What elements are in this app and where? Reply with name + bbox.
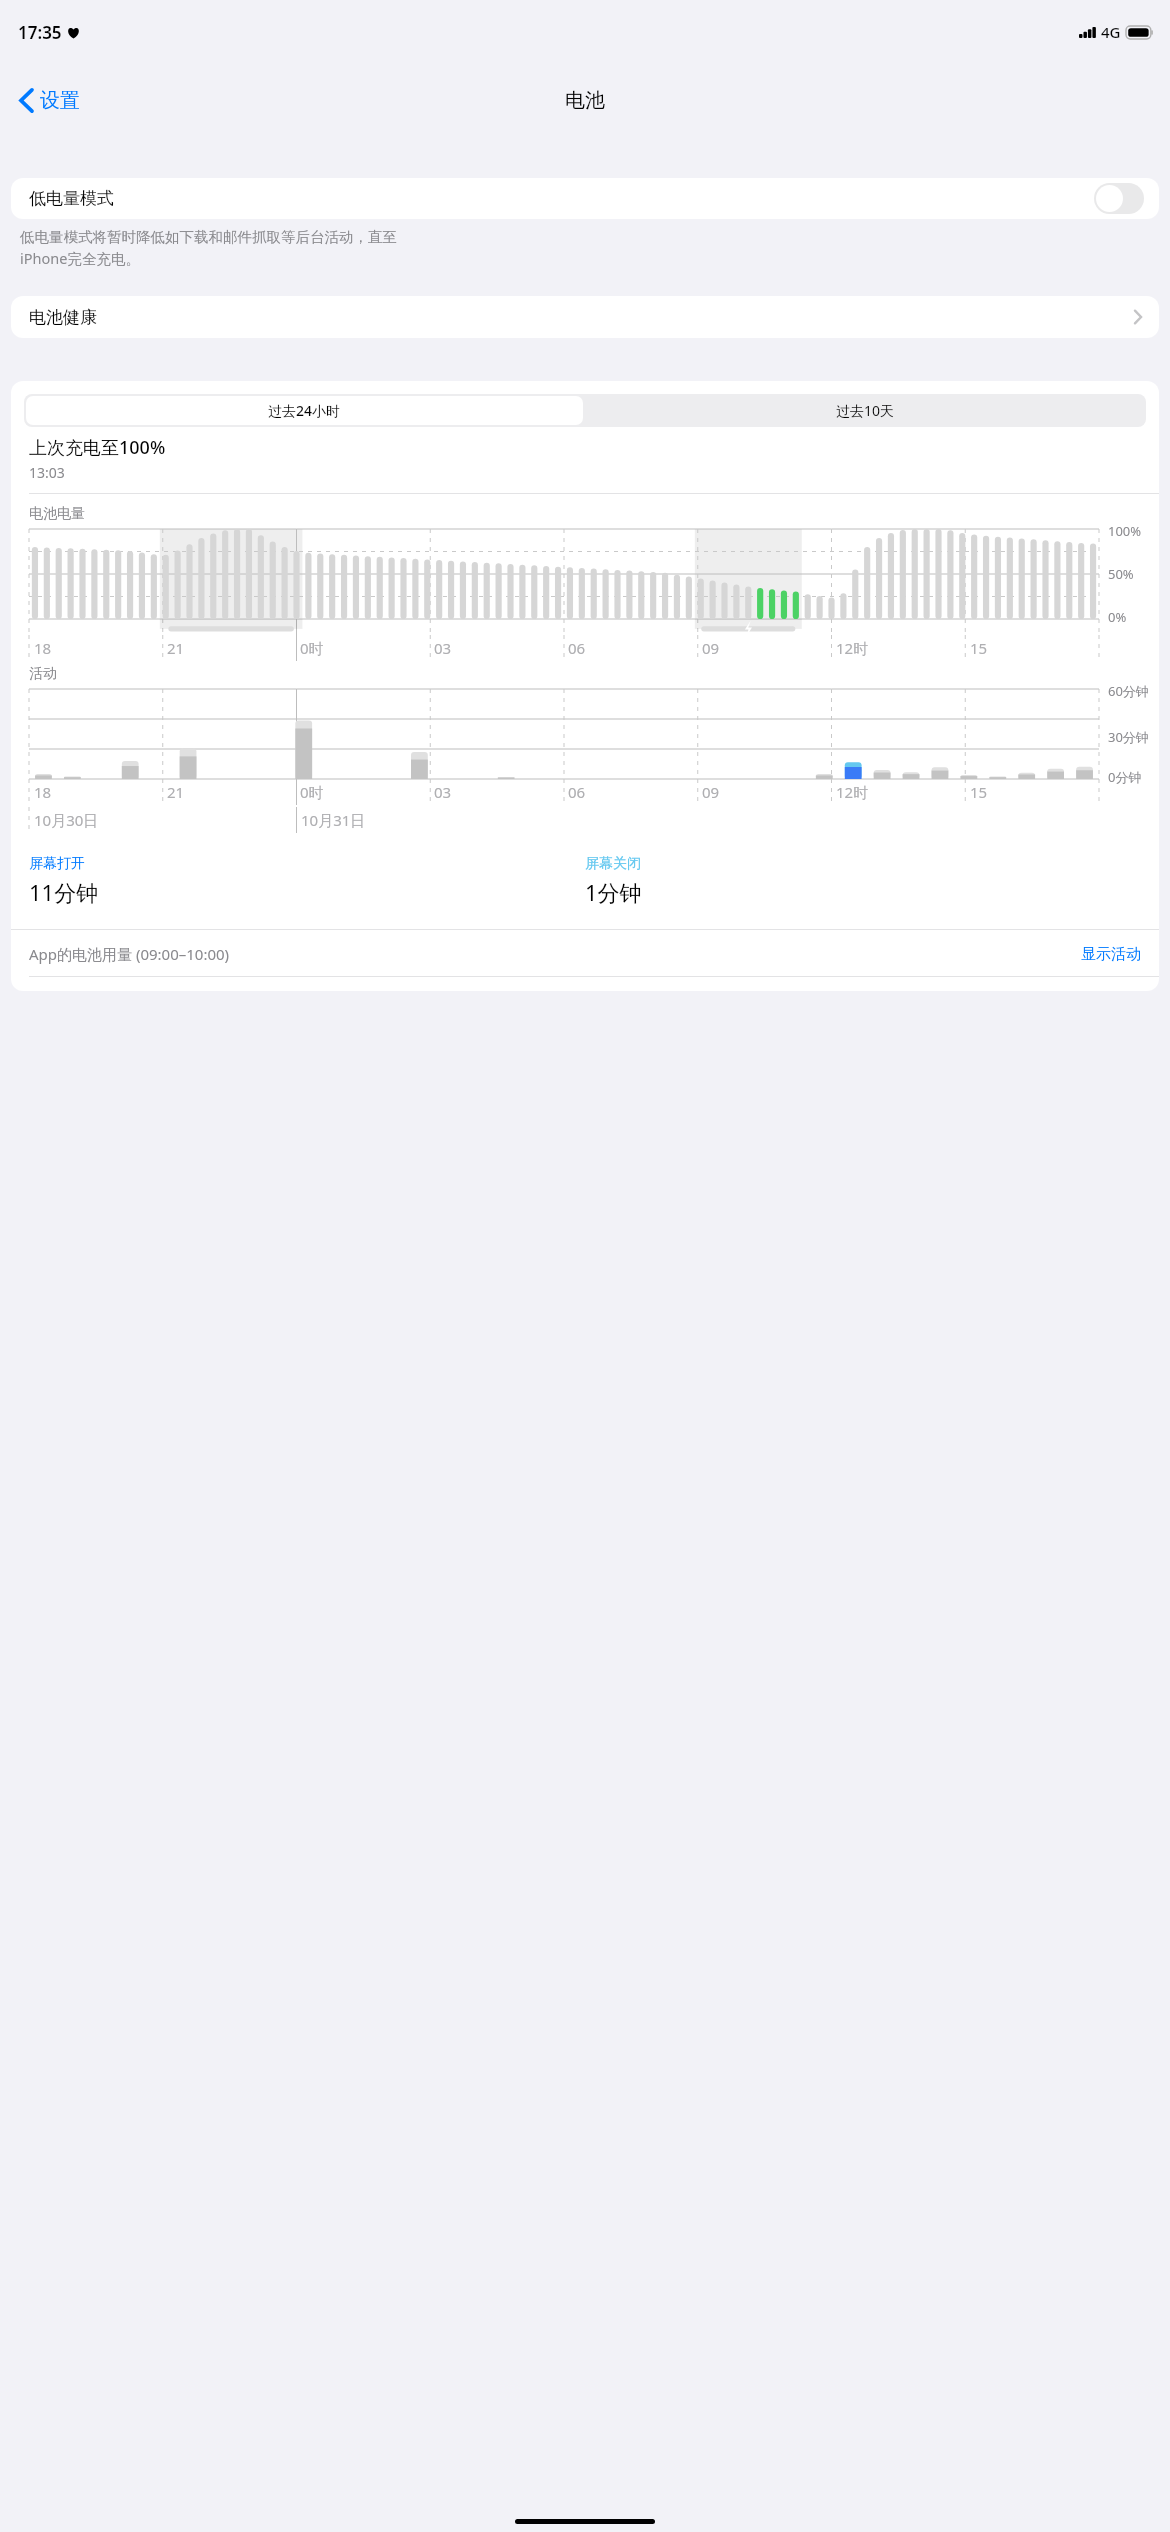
button[interactable]: 低电量模式 [11,178,1159,219]
staticText: 21 [167,782,185,802]
staticText: 06 [568,782,586,802]
staticText: 0分钟 [1108,768,1142,786]
staticText: 03 [434,638,452,658]
staticText: 10月31日 [301,810,366,830]
staticText: 上次充电至100% [29,435,166,460]
staticText: 0% [1108,608,1127,626]
staticText: 屏幕打开 [29,855,85,873]
staticText: 过去24小时 [268,401,341,420]
button[interactable]: 电池健康 [11,296,1159,338]
staticText: 12时 [836,782,869,802]
staticText: 过去10天 [836,401,895,420]
button[interactable]: 设置 [14,82,86,119]
staticText: 低电量模式 [29,188,114,209]
staticText: 30分钟 [1108,728,1149,746]
staticText: App的电池用量 (09:00–10:00) [29,944,230,964]
staticText: 设置 [40,88,80,113]
staticText: 18 [34,782,52,802]
staticText: 100% [1108,522,1142,540]
staticText: 09 [702,638,720,658]
staticText: iPhone完全充电。 [20,248,140,268]
staticText: 屏幕关闭 [585,855,641,873]
staticText: 06 [568,638,586,658]
staticText: 11分钟 [29,877,99,907]
staticText: 17:35 [18,21,62,44]
staticText: 50% [1108,565,1134,583]
staticText: 03 [434,782,452,802]
staticText: 电池电量 [29,505,85,523]
staticText: 活动 [29,665,57,683]
staticText: 电池 [565,88,605,113]
staticText: 09 [702,782,720,802]
staticText: 12时 [836,638,869,658]
staticText: 0时 [300,782,324,802]
staticText: 18 [34,638,52,658]
button[interactable]: 过去10天 [585,394,1146,427]
staticText: 显示活动 [1081,945,1141,964]
staticText: 1分钟 [585,877,642,907]
staticText: 低电量模式将暂时降低如下载和邮件抓取等后台活动，直至 [20,228,397,246]
staticText: 60分钟 [1108,682,1149,700]
button[interactable]: 过去24小时 [26,396,583,425]
button[interactable]: 显示活动 [1081,945,1141,964]
staticText: 4G [1101,22,1121,42]
staticText: 0时 [300,638,324,658]
staticText: 电池健康 [29,307,97,328]
staticText: 13:03 [29,463,65,482]
staticText: 15 [970,782,988,802]
staticText: 10月30日 [34,810,99,830]
staticText: 15 [970,638,988,658]
staticText: 21 [167,638,185,658]
